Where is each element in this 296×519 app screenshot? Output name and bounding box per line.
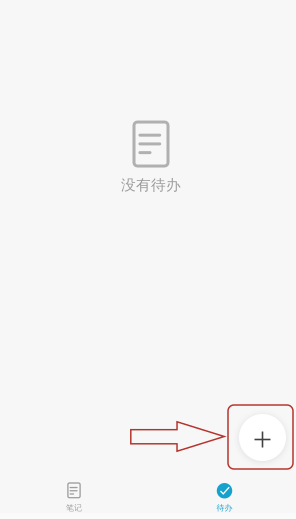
staticText: 待办 — [216, 503, 232, 513]
staticText: 笔记 — [66, 503, 82, 513]
button[interactable]: 笔记 — [0, 477, 148, 519]
staticText: 没有待办 — [121, 176, 181, 194]
button[interactable]: 新建待办 — [239, 414, 286, 461]
button[interactable]: 待办 — [148, 477, 296, 519]
